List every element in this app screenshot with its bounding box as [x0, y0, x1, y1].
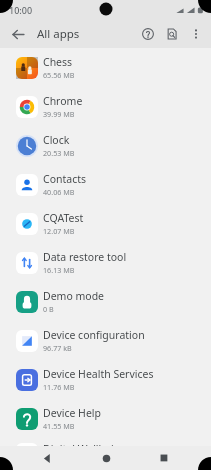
staticText: Demo mode: [43, 289, 105, 303]
staticText: Digital Wellbeing: [43, 442, 127, 456]
staticText: 11.76 MB: [43, 382, 75, 392]
staticText: Device Health Services: [43, 367, 154, 381]
button[interactable]: Search in page: [160, 22, 184, 46]
staticText: Clock: [43, 133, 70, 147]
staticText: CQATest: [43, 211, 84, 225]
button[interactable]: Back: [6, 22, 30, 46]
staticText: 21.28 MB: [43, 457, 75, 467]
button[interactable]: CQATest: [0, 204, 211, 243]
staticText: 40.06 MB: [43, 187, 75, 197]
button[interactable]: Help: [136, 22, 160, 46]
staticText: 96.77 kB: [43, 343, 72, 353]
button[interactable]: Digital Wellbeing: [0, 438, 211, 470]
staticText: Device Help: [43, 406, 101, 420]
staticText: 20.53 MB: [43, 148, 75, 158]
staticText: Contacts: [43, 172, 87, 186]
button[interactable]: Device Health Services: [0, 360, 211, 399]
staticText: Chess: [43, 55, 73, 69]
button[interactable]: Clock: [0, 126, 211, 165]
button[interactable]: Demo mode: [0, 282, 211, 321]
button[interactable]: Device Help: [0, 399, 211, 438]
button[interactable]: Recent apps: [152, 446, 176, 470]
button[interactable]: Chrome: [0, 87, 211, 126]
button[interactable]: Data restore tool: [0, 243, 211, 282]
staticText: 10:00: [9, 4, 33, 16]
staticText: 0 B: [43, 304, 54, 314]
staticText: All apps: [37, 26, 80, 42]
button[interactable]: Back: [35, 446, 59, 470]
staticText: 16.13 MB: [43, 265, 75, 275]
button[interactable]: Contacts: [0, 165, 211, 204]
staticText: Device configuration: [43, 328, 145, 342]
button[interactable]: Home: [94, 446, 118, 470]
staticText: 39.99 MB: [43, 109, 75, 119]
button[interactable]: Chess: [0, 48, 211, 87]
button[interactable]: More options: [184, 22, 208, 46]
staticText: 65.56 MB: [43, 70, 75, 80]
button[interactable]: Device configuration: [0, 321, 211, 360]
staticText: Chrome: [43, 94, 83, 108]
staticText: 12.07 MB: [43, 226, 75, 236]
staticText: 41.55 MB: [43, 421, 75, 431]
staticText: Data restore tool: [43, 250, 127, 264]
